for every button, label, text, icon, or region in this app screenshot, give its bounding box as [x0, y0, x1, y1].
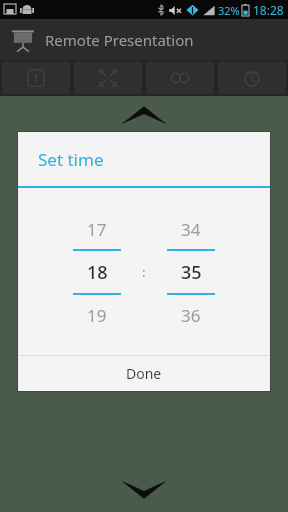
button[interactable]: 17	[66, 209, 128, 249]
button[interactable]: 18	[66, 251, 128, 293]
staticText: 18	[87, 260, 108, 285]
staticText: :	[142, 263, 146, 281]
staticText: 18:28	[253, 2, 284, 18]
button[interactable]: 19	[66, 295, 128, 335]
button[interactable]: Fullscreen	[74, 62, 142, 94]
button[interactable]: Previous slide	[120, 103, 168, 127]
staticText: 17	[87, 218, 107, 241]
button[interactable]: 35	[160, 251, 222, 293]
button[interactable]: Next slide	[120, 478, 168, 502]
staticText: 32%	[218, 3, 240, 18]
button[interactable]: 36	[160, 295, 222, 335]
button[interactable]: Slide number	[2, 62, 70, 94]
button[interactable]: Done	[18, 356, 270, 391]
staticText: 19	[87, 304, 107, 327]
staticText: Second line of slide	[54, 289, 235, 316]
staticText: 34	[181, 218, 201, 241]
staticText: Slide title text here	[56, 252, 232, 279]
staticText: 36	[181, 304, 201, 327]
staticText: Remote Presentation	[45, 30, 194, 50]
staticText: Done	[126, 364, 162, 383]
staticText: 35	[181, 260, 202, 285]
staticText: Set time	[38, 148, 104, 171]
button[interactable]: App icon	[7, 24, 39, 56]
button[interactable]: 34	[160, 209, 222, 249]
